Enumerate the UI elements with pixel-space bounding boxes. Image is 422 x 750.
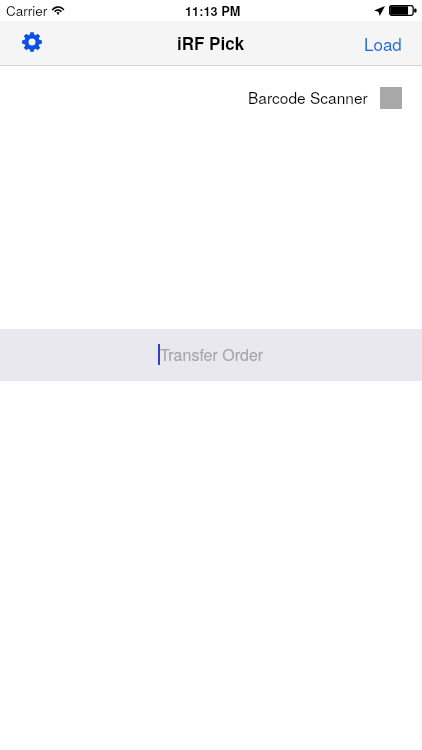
button[interactable]: Transfer Order	[0, 329, 422, 381]
staticText: Transfer Order	[160, 343, 264, 366]
staticText: Barcode Scanner	[248, 86, 368, 108]
staticText: Carrier	[6, 1, 48, 20]
staticText: iRF Pick	[177, 31, 245, 55]
button[interactable]: Load	[359, 24, 407, 62]
staticText: Load	[364, 31, 402, 55]
button[interactable]: Settings	[12, 23, 52, 63]
staticText: 11:13 PM	[185, 2, 241, 20]
